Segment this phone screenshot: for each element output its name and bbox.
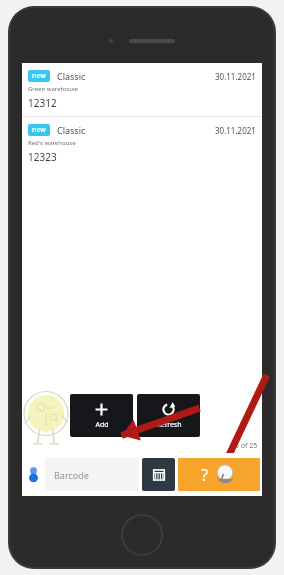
button[interactable]: Help [178, 458, 260, 491]
button[interactable]: Refresh [137, 394, 200, 437]
staticText: Classic [57, 70, 86, 82]
staticText: 12312 [28, 96, 57, 110]
button[interactable]: new [22, 63, 262, 116]
staticText: 12323 [28, 150, 57, 164]
staticText: Barcode [54, 469, 89, 481]
button[interactable]: Barcode [45, 458, 139, 491]
button[interactable]: new [22, 117, 262, 170]
staticText: Red's warehouse [28, 139, 76, 147]
staticText: new [32, 125, 46, 135]
staticText: 30.11.2021 [215, 125, 256, 136]
staticText: Green warehouse [28, 85, 78, 93]
staticText: 25 of 25 [231, 441, 258, 451]
staticText: Refresh [156, 420, 182, 430]
staticText: ? [201, 464, 208, 486]
staticText: Classic [57, 124, 86, 136]
button[interactable]: Scan barcode [142, 458, 175, 491]
button[interactable]: Add [70, 394, 133, 437]
button[interactable]: Location [25, 466, 42, 483]
staticText: new [32, 71, 46, 81]
staticText: Add [95, 420, 109, 430]
staticText: 30.11.2021 [215, 71, 256, 82]
